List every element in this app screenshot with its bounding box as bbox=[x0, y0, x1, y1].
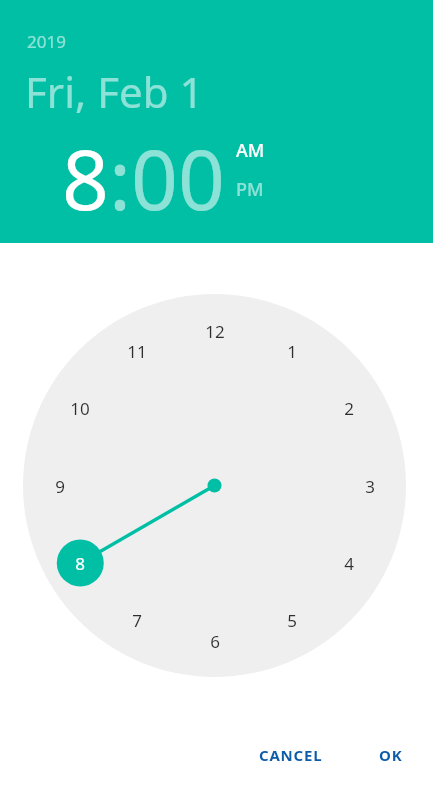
staticText: 6 bbox=[210, 630, 220, 653]
staticText: : bbox=[109, 122, 131, 234]
staticText: 2 bbox=[344, 397, 354, 420]
button[interactable]: 11 o'clock bbox=[118, 338, 156, 364]
staticText: 5 bbox=[287, 609, 297, 632]
staticText: 12 bbox=[205, 320, 225, 343]
staticText: 1 bbox=[287, 340, 297, 363]
button[interactable]: Fri, Feb 1 bbox=[25, 63, 204, 120]
button[interactable]: 5 o'clock bbox=[273, 607, 311, 633]
staticText: AM bbox=[236, 138, 265, 163]
button[interactable]: 1 o'clock bbox=[273, 338, 311, 364]
button[interactable]: AM bbox=[236, 138, 265, 163]
button[interactable]: 8 bbox=[62, 122, 109, 234]
button[interactable]: 2019 bbox=[27, 30, 66, 53]
staticText: 9 bbox=[55, 475, 65, 498]
button[interactable]: 8 o'clock bbox=[61, 550, 99, 576]
button[interactable]: 2 o'clock bbox=[330, 395, 368, 421]
button[interactable]: 4 o'clock bbox=[330, 550, 368, 576]
button[interactable]: 12 o'clock bbox=[196, 318, 234, 344]
staticText: CANCEL bbox=[259, 745, 323, 765]
staticText: 11 bbox=[127, 340, 147, 363]
staticText: 8 bbox=[62, 122, 109, 234]
staticText: 3 bbox=[365, 475, 375, 498]
button[interactable]: 7 o'clock bbox=[118, 607, 156, 633]
staticText: 00 bbox=[131, 122, 225, 234]
staticText: 10 bbox=[70, 397, 90, 420]
staticText: 7 bbox=[132, 609, 142, 632]
staticText: 4 bbox=[344, 552, 354, 575]
button[interactable]: PM bbox=[236, 177, 264, 202]
staticText: PM bbox=[236, 177, 264, 202]
staticText: 2019 bbox=[27, 30, 66, 53]
button[interactable]: 6 o'clock bbox=[196, 628, 234, 654]
staticText: OK bbox=[379, 745, 403, 765]
staticText: Fri, Feb 1 bbox=[25, 63, 204, 120]
button[interactable]: OK bbox=[366, 736, 416, 774]
staticText: 8 bbox=[75, 552, 85, 575]
button[interactable]: 3 o'clock bbox=[351, 473, 389, 499]
button[interactable]: 9 o'clock bbox=[41, 473, 79, 499]
button[interactable]: 10 o'clock bbox=[61, 395, 99, 421]
button[interactable]: 00 bbox=[131, 122, 225, 234]
button[interactable]: CANCEL bbox=[246, 736, 336, 774]
